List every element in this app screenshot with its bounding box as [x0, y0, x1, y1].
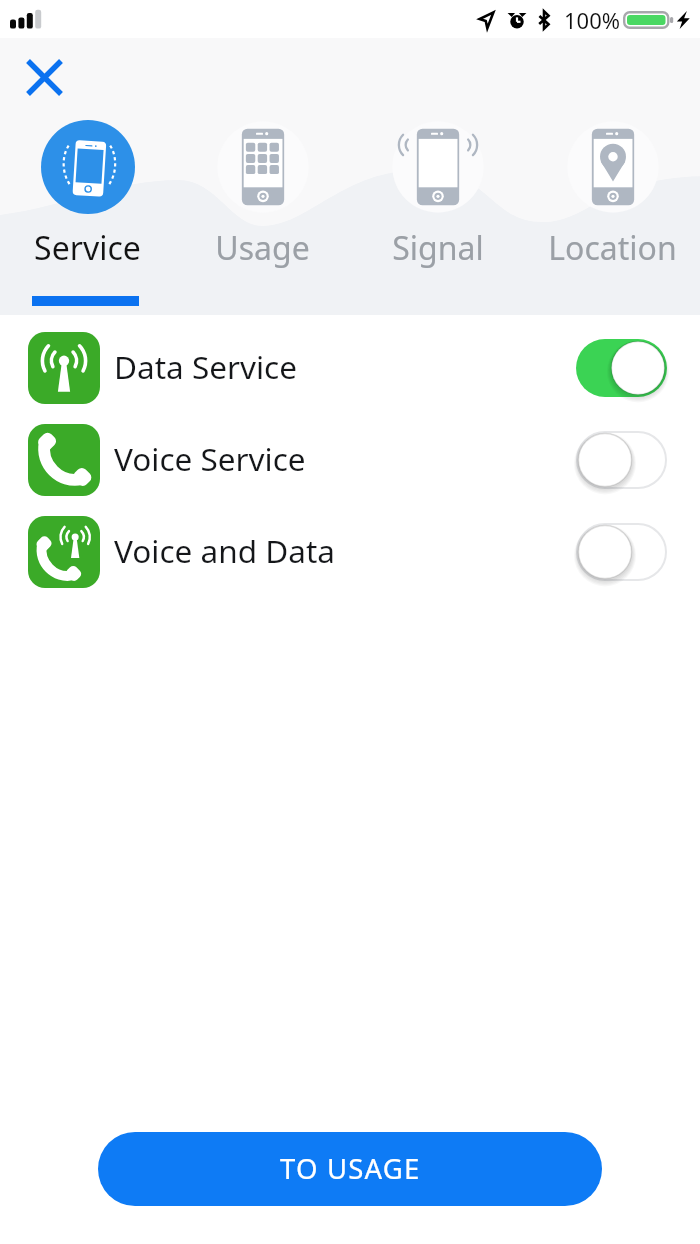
- button[interactable]: Toggle off: [576, 523, 667, 581]
- button[interactable]: Location: [525, 38, 700, 305]
- button[interactable]: Close: [11, 44, 78, 111]
- button[interactable]: Signal: [350, 38, 525, 305]
- staticText: Location: [548, 226, 677, 270]
- staticText: Signal: [392, 226, 484, 270]
- button[interactable]: Voice Service: [0, 424, 700, 496]
- button[interactable]: Voice and Data: [0, 516, 700, 588]
- button[interactable]: Service: [0, 38, 175, 305]
- button[interactable]: Data Service: [0, 332, 700, 404]
- button[interactable]: Toggle on: [576, 339, 667, 397]
- button[interactable]: TO USAGE: [98, 1132, 602, 1206]
- staticText: Service: [34, 226, 141, 270]
- button[interactable]: Usage: [175, 38, 350, 305]
- staticText: 100%: [564, 5, 621, 35]
- staticText: Voice Service: [114, 437, 306, 480]
- staticText: Usage: [215, 226, 310, 270]
- staticText: TO USAGE: [280, 1150, 421, 1187]
- staticText: Voice and Data: [114, 529, 335, 572]
- button[interactable]: Toggle off: [576, 431, 667, 489]
- staticText: Data Service: [114, 345, 297, 388]
